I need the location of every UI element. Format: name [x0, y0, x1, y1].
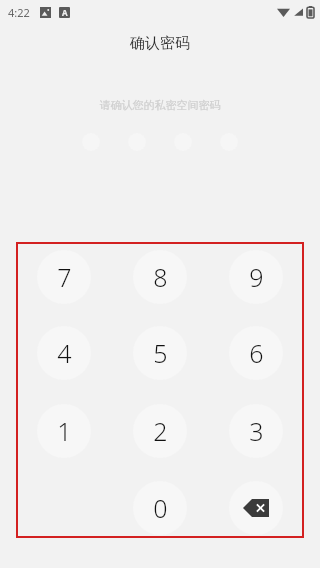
- button[interactable]: 3: [229, 404, 283, 458]
- button[interactable]: 9: [229, 250, 283, 304]
- staticText: 1: [57, 414, 72, 448]
- staticText: 确认密码: [0, 34, 320, 53]
- button[interactable]: 2: [133, 404, 187, 458]
- button[interactable]: 6: [229, 326, 283, 380]
- button[interactable]: 0: [133, 481, 187, 535]
- staticText: 0: [153, 491, 168, 525]
- staticText: 7: [57, 260, 72, 294]
- staticText: 请确认您的私密空间密码: [0, 98, 320, 112]
- button[interactable]: 1: [37, 404, 91, 458]
- button[interactable]: 5: [133, 326, 187, 380]
- staticText: 9: [249, 260, 264, 294]
- button[interactable]: Backspace: [229, 481, 283, 535]
- button[interactable]: 4: [37, 326, 91, 380]
- staticText: 5: [153, 336, 168, 370]
- staticText: 8: [153, 260, 168, 294]
- button[interactable]: 7: [37, 250, 91, 304]
- staticText: 4:22: [8, 5, 30, 20]
- staticText: 6: [249, 336, 264, 370]
- staticText: 2: [153, 414, 168, 448]
- staticText: 4: [57, 336, 72, 370]
- staticText: 3: [249, 414, 264, 448]
- button[interactable]: 8: [133, 250, 187, 304]
- staticText: A: [62, 7, 68, 18]
